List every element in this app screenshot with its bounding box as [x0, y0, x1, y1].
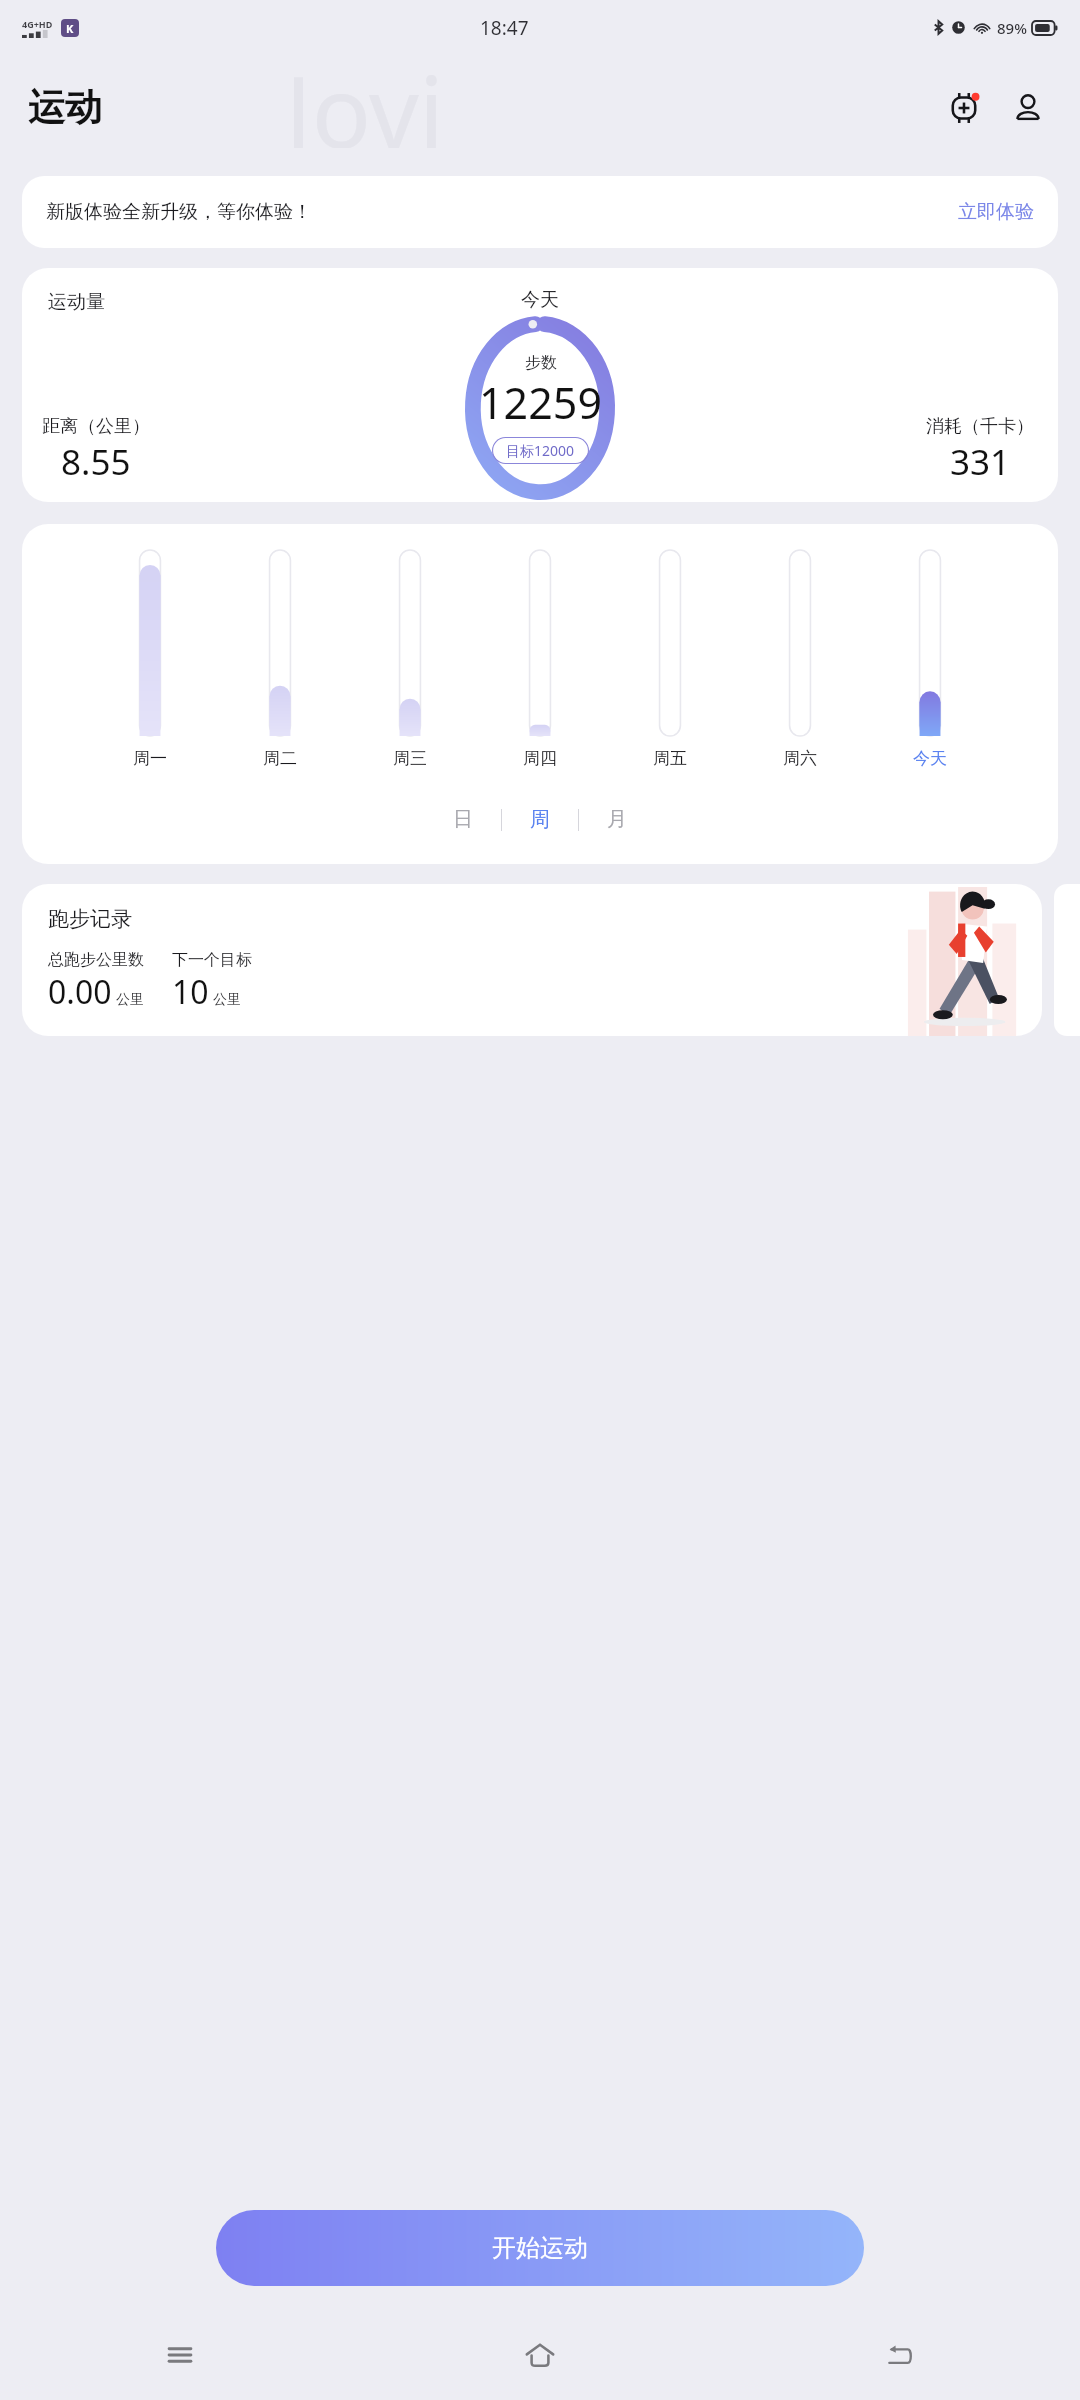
staticText: 12259 [479, 373, 602, 432]
button[interactable]: 开始运动 [216, 2210, 864, 2286]
staticText: 新版体验全新升级，等你体验！ [46, 200, 312, 224]
staticText: 89% [997, 18, 1027, 38]
button[interactable]: Profile [1004, 84, 1052, 132]
staticText: 公里 [116, 991, 144, 1009]
button[interactable]: 跑步记录 [22, 884, 1042, 1036]
staticText: 步数 [525, 353, 557, 373]
staticText: Jovi [285, 43, 445, 148]
staticText: K [66, 21, 74, 36]
staticText: 周三 [393, 748, 427, 769]
staticText: 周二 [263, 748, 297, 769]
staticText: 18:47 [480, 15, 529, 41]
staticText: 跑步记录 [48, 906, 132, 932]
staticText: 运动量 [48, 290, 105, 314]
staticText: 公里 [213, 991, 241, 1009]
button[interactable]: Back [720, 2326, 1080, 2384]
button[interactable]: 周一 [22, 524, 1058, 864]
staticText: 今天 [521, 288, 559, 312]
staticText: 周一 [133, 748, 167, 769]
staticText: 下一个目标 [172, 950, 252, 970]
button[interactable]: Add watch [940, 84, 988, 132]
staticText: 距离（公里） [42, 415, 150, 438]
staticText: 月 [607, 807, 627, 832]
staticText: 周六 [783, 748, 817, 769]
staticText: 立即体验 [958, 200, 1034, 224]
button[interactable]: 月 [579, 801, 655, 838]
staticText: 10 [172, 970, 209, 1014]
staticText: 今天 [913, 748, 947, 769]
staticText: 4G+HD [22, 18, 53, 30]
staticText: 开始运动 [492, 2233, 588, 2263]
staticText: 0.00 [48, 970, 112, 1014]
staticText: 日 [453, 807, 473, 832]
staticText: 8.55 [61, 438, 131, 486]
staticText: 运动 [28, 84, 102, 131]
button[interactable]: Home [360, 2326, 720, 2384]
staticText: 目标12000 [506, 441, 575, 460]
staticText: 周 [530, 807, 550, 832]
button[interactable]: 运动量 [22, 268, 1058, 502]
staticText: 周五 [653, 748, 687, 769]
staticText: 周四 [523, 748, 557, 769]
button[interactable]: Recents [0, 2326, 360, 2384]
button[interactable]: 新版体验全新升级，等你体验！ [22, 176, 1058, 248]
button[interactable]: 日 [425, 801, 501, 838]
staticText: 331 [950, 438, 1011, 486]
button[interactable]: 周 [502, 801, 578, 838]
staticText: 消耗（千卡） [926, 415, 1034, 438]
staticText: 总跑步公里数 [48, 950, 144, 970]
